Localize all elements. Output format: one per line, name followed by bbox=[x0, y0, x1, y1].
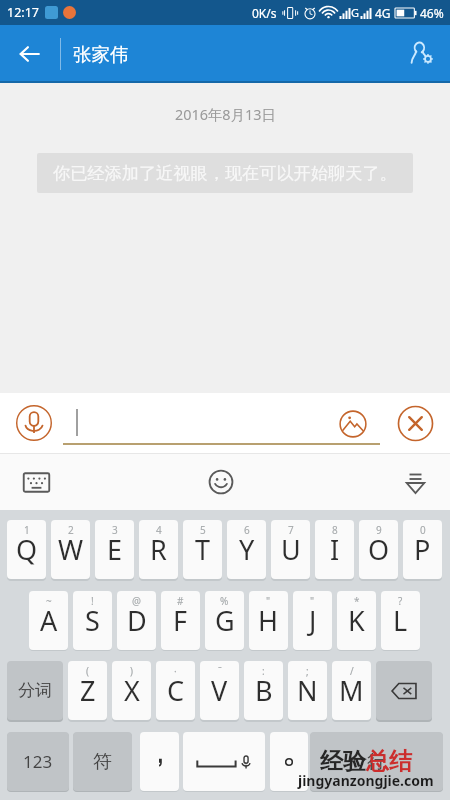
staticText: A bbox=[40, 602, 58, 639]
staticText: ˉ bbox=[218, 664, 222, 678]
button[interactable]: ~ bbox=[29, 591, 68, 650]
staticText: 12:17 bbox=[7, 4, 39, 21]
staticText: 1 bbox=[24, 523, 30, 537]
button[interactable]: Contact settings bbox=[394, 25, 450, 83]
staticText: · bbox=[174, 664, 177, 678]
staticText: ! bbox=[91, 594, 94, 608]
staticText: 符 bbox=[93, 750, 112, 774]
staticText: ( bbox=[86, 664, 89, 678]
button[interactable] bbox=[270, 732, 308, 791]
button[interactable]: 1 bbox=[7, 520, 46, 579]
staticText: 3 bbox=[112, 523, 118, 537]
button[interactable]: ˉ bbox=[200, 661, 239, 720]
staticText: 9 bbox=[376, 523, 382, 537]
button[interactable]: 0 bbox=[403, 520, 442, 579]
staticText: * bbox=[354, 594, 360, 608]
staticText: 4 bbox=[156, 523, 162, 537]
staticText: G bbox=[215, 602, 235, 639]
staticText: E bbox=[107, 531, 123, 568]
staticText: F bbox=[173, 602, 188, 639]
staticText: 0K/s bbox=[252, 5, 277, 21]
staticText: X bbox=[124, 672, 140, 709]
staticText: 7 bbox=[288, 523, 294, 537]
button[interactable]: 9 bbox=[359, 520, 398, 579]
button[interactable]: 5 bbox=[183, 520, 222, 579]
staticText: 123 bbox=[23, 750, 53, 773]
staticText: # bbox=[177, 594, 184, 608]
button[interactable]: * bbox=[337, 591, 376, 650]
staticText: ? bbox=[398, 594, 403, 608]
button[interactable]: Voice input bbox=[16, 405, 52, 441]
button[interactable]: 7 bbox=[271, 520, 310, 579]
button[interactable]: ; bbox=[288, 661, 327, 720]
staticText: Q bbox=[16, 531, 38, 568]
button[interactable]: " bbox=[249, 591, 288, 650]
staticText: 2 bbox=[68, 523, 74, 537]
staticText: R bbox=[150, 531, 167, 568]
staticText: N bbox=[297, 672, 318, 709]
staticText: 4G bbox=[375, 5, 391, 21]
staticText: S bbox=[85, 602, 100, 639]
staticText: B bbox=[255, 672, 273, 709]
staticText: L bbox=[393, 602, 408, 639]
staticText: ; bbox=[306, 664, 309, 678]
staticText: Y bbox=[239, 531, 255, 568]
staticText: 6 bbox=[244, 523, 250, 537]
staticText: G bbox=[351, 5, 360, 20]
button[interactable]: 6 bbox=[227, 520, 266, 579]
button[interactable]: 符 bbox=[73, 732, 132, 791]
staticText: " bbox=[266, 594, 271, 608]
button[interactable]: : bbox=[244, 661, 283, 720]
button[interactable]: Close bbox=[397, 405, 434, 442]
staticText: 0 bbox=[420, 523, 426, 537]
button[interactable] bbox=[376, 661, 432, 720]
button[interactable]: Hide keyboard bbox=[385, 459, 445, 505]
staticText: M bbox=[339, 672, 364, 709]
button[interactable]: 分词 bbox=[7, 661, 63, 720]
staticText: " bbox=[310, 594, 315, 608]
staticText: H bbox=[258, 602, 279, 639]
button[interactable] bbox=[183, 732, 265, 791]
staticText: P bbox=[414, 531, 431, 568]
staticText: Z bbox=[80, 672, 96, 709]
button[interactable]: ( bbox=[68, 661, 107, 720]
staticText: : bbox=[262, 664, 265, 678]
staticText: W bbox=[58, 531, 84, 568]
button[interactable]: 8 bbox=[315, 520, 354, 579]
staticText: 行 bbox=[367, 750, 386, 774]
button[interactable]: ) bbox=[112, 661, 151, 720]
staticText: V bbox=[211, 672, 228, 709]
button[interactable]: @ bbox=[117, 591, 156, 650]
staticText: 经验 bbox=[320, 747, 366, 776]
staticText: K bbox=[348, 602, 365, 639]
button[interactable]: # bbox=[161, 591, 200, 650]
staticText: I bbox=[330, 531, 340, 568]
button[interactable]: 2 bbox=[51, 520, 90, 579]
staticText: U bbox=[281, 531, 301, 568]
staticText: O bbox=[368, 531, 390, 568]
staticText: ~ bbox=[46, 594, 52, 608]
button[interactable]: ? bbox=[381, 591, 420, 650]
button[interactable]: Keyboard bbox=[6, 459, 66, 505]
staticText: C bbox=[167, 672, 185, 709]
staticText: 46% bbox=[420, 5, 444, 21]
button[interactable]: 3 bbox=[95, 520, 134, 579]
button[interactable]: % bbox=[205, 591, 244, 650]
staticText: 8 bbox=[332, 523, 338, 537]
button[interactable]: · bbox=[156, 661, 195, 720]
staticText: J bbox=[309, 602, 317, 639]
button[interactable]: 123 bbox=[7, 732, 69, 791]
button[interactable]: " bbox=[293, 591, 332, 650]
staticText: jingyanzongjie.com bbox=[298, 771, 434, 790]
button[interactable]: Emoji bbox=[191, 459, 251, 505]
button[interactable]: / bbox=[332, 661, 371, 720]
button[interactable] bbox=[140, 732, 179, 791]
button[interactable]: Send image bbox=[339, 410, 367, 438]
staticText: D bbox=[127, 602, 147, 639]
button[interactable]: ! bbox=[73, 591, 112, 650]
button[interactable]: 4 bbox=[139, 520, 178, 579]
button[interactable]: 行 bbox=[310, 732, 443, 791]
staticText: 总结 bbox=[366, 747, 412, 776]
staticText: 张家伟 bbox=[73, 43, 129, 66]
button[interactable]: Back bbox=[0, 25, 60, 83]
